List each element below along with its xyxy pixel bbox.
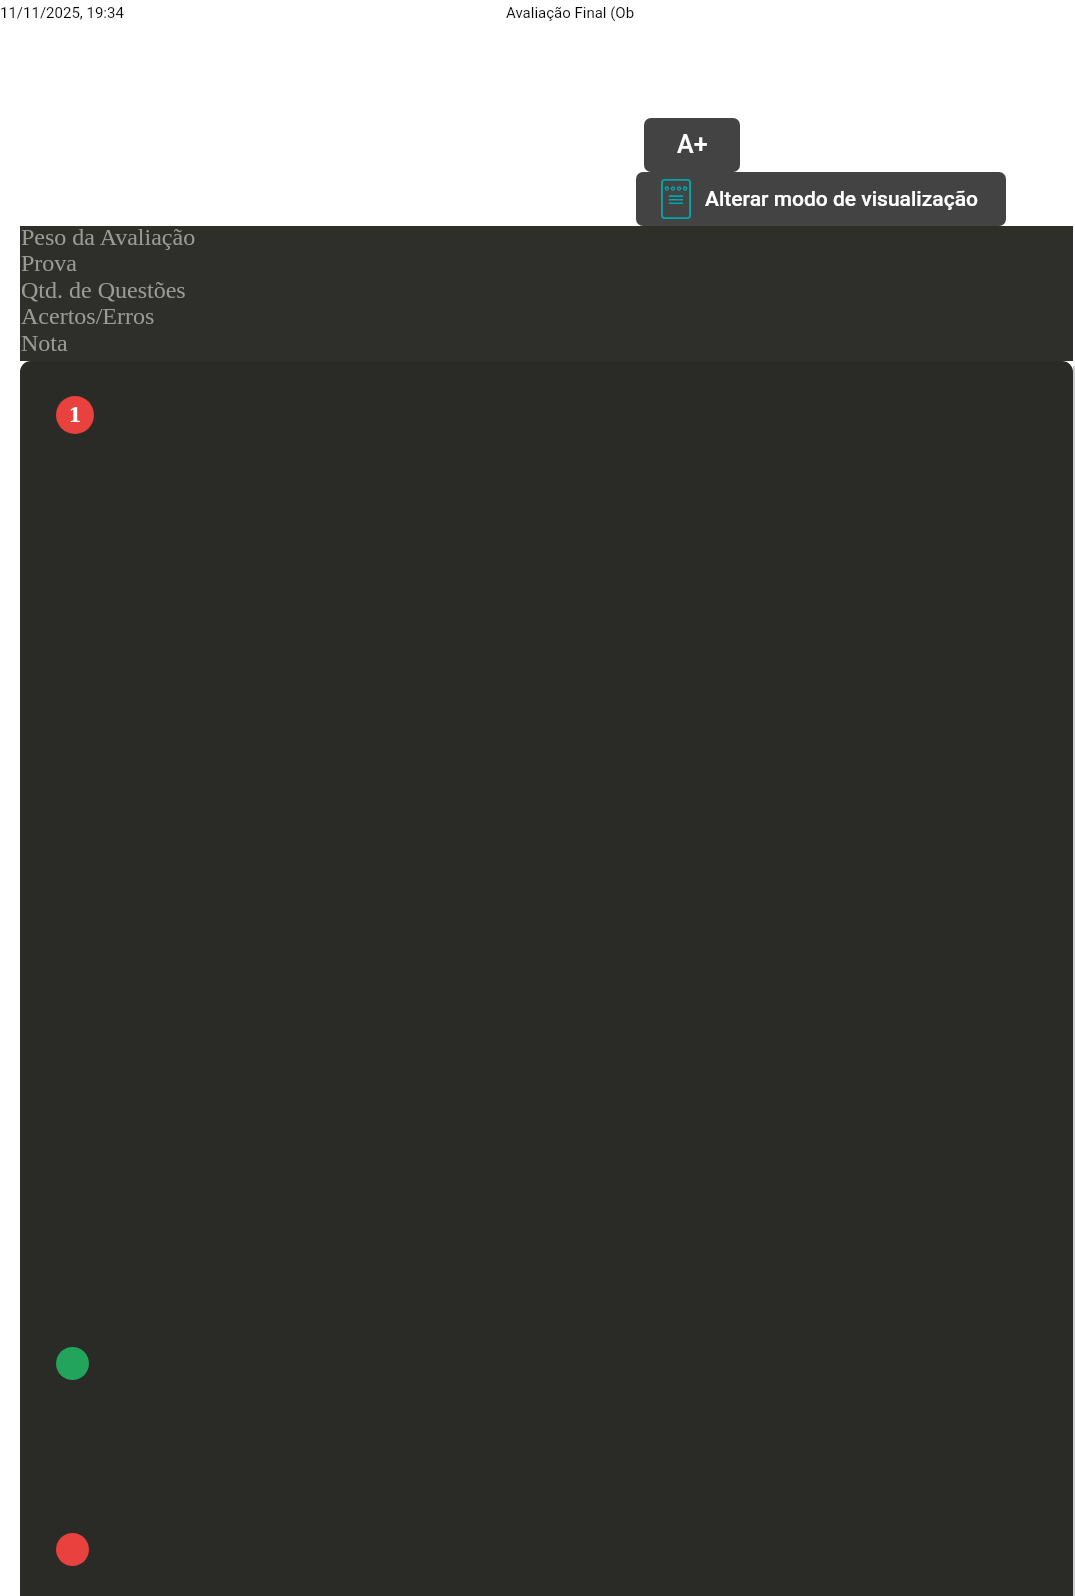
button[interactable]: A+ bbox=[644, 118, 740, 172]
staticText: Acertos/Erros bbox=[21, 303, 155, 330]
staticText: A+ bbox=[677, 130, 708, 159]
staticText: Avaliação Final (Ob bbox=[506, 4, 635, 22]
staticText: Peso da Avaliação bbox=[21, 224, 196, 251]
staticText: 1 bbox=[69, 401, 81, 428]
staticText: Nota bbox=[21, 330, 68, 357]
staticText: Alterar modo de visualização bbox=[705, 187, 978, 212]
staticText: Prova bbox=[21, 250, 77, 277]
staticText: Qtd. de Questões bbox=[21, 277, 186, 304]
staticText: 11/11/2025, 19:34 bbox=[0, 4, 124, 22]
button[interactable]: Alterar modo de visualização bbox=[636, 172, 1006, 226]
other: Alterar modo de visualização bbox=[661, 179, 691, 219]
